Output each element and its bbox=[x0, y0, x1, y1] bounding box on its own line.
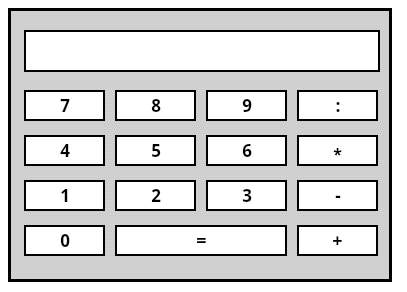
button[interactable]: Multiply bbox=[297, 135, 378, 166]
button[interactable]: Equals bbox=[115, 225, 287, 256]
staticText: * bbox=[333, 143, 342, 165]
button[interactable]: 3 bbox=[206, 180, 287, 211]
staticText: 4 bbox=[60, 139, 70, 162]
staticText: 1 bbox=[60, 184, 70, 207]
button[interactable]: 9 bbox=[206, 90, 287, 121]
staticText: 9 bbox=[242, 94, 252, 117]
staticText: 3 bbox=[242, 184, 252, 207]
staticText: 5 bbox=[151, 139, 161, 162]
staticText: + bbox=[332, 228, 343, 253]
button[interactable]: 2 bbox=[115, 180, 196, 211]
button[interactable]: 1 bbox=[24, 180, 105, 211]
button[interactable]: 7 bbox=[24, 90, 105, 121]
staticText: = bbox=[196, 228, 207, 253]
staticText: 8 bbox=[151, 94, 161, 117]
staticText: 7 bbox=[60, 94, 70, 117]
button[interactable]: 0 bbox=[24, 225, 105, 256]
staticText: : bbox=[335, 93, 341, 118]
button[interactable]: Add bbox=[297, 225, 378, 256]
button[interactable]: Divide bbox=[297, 90, 378, 121]
button[interactable]: 4 bbox=[24, 135, 105, 166]
button[interactable]: Subtract bbox=[297, 180, 378, 211]
staticText: 0 bbox=[60, 229, 70, 252]
button[interactable]: 5 bbox=[115, 135, 196, 166]
staticText: - bbox=[335, 184, 341, 207]
staticText: 2 bbox=[151, 184, 161, 207]
button[interactable]: 6 bbox=[206, 135, 287, 166]
button[interactable]: 8 bbox=[115, 90, 196, 121]
staticText: 6 bbox=[242, 139, 252, 162]
